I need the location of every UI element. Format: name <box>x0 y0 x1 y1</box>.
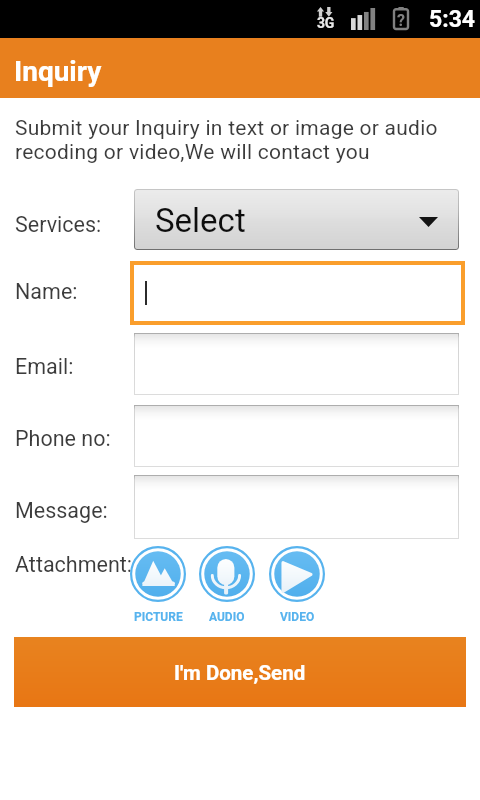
button[interactable]: AUDIO <box>199 546 255 624</box>
button[interactable]: VIDEO <box>269 546 325 624</box>
staticText: Name: <box>15 279 78 304</box>
staticText: Message: <box>15 498 108 523</box>
staticText: ? <box>396 11 406 30</box>
button[interactable] <box>134 405 459 467</box>
staticText: Inquiry <box>14 55 102 88</box>
staticText: Submit your Inquiry in text or image or … <box>15 116 460 164</box>
button[interactable] <box>134 333 459 395</box>
staticText: AUDIO <box>209 610 245 624</box>
button[interactable] <box>134 265 461 321</box>
button[interactable] <box>134 475 459 539</box>
staticText: VIDEO <box>280 610 315 624</box>
staticText: PICTURE <box>134 610 183 624</box>
button[interactable]: PICTURE <box>130 546 186 624</box>
button[interactable]: I'm Done,Send <box>14 637 466 707</box>
staticText: I'm Done,Send <box>174 661 306 685</box>
staticText: Phone no: <box>15 426 111 451</box>
staticText: Services: <box>15 212 102 237</box>
staticText: Select <box>155 201 246 240</box>
staticText: Email: <box>15 354 74 379</box>
staticText: 3G <box>317 15 334 31</box>
staticText: 5:34 <box>429 6 476 33</box>
button[interactable]: Select <box>134 189 459 250</box>
staticText: Attachment: <box>15 552 133 577</box>
